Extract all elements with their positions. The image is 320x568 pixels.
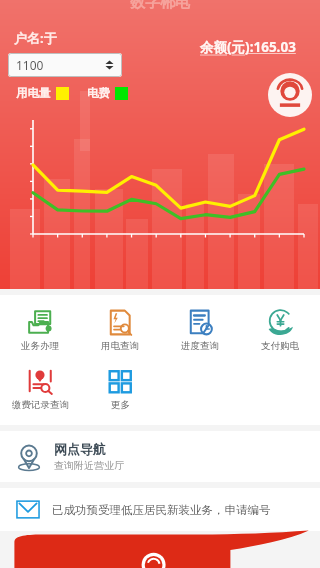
staticText: 支付购电: [261, 340, 299, 352]
staticText: 户名:于: [14, 29, 57, 47]
button[interactable]: 支付购电: [240, 305, 320, 356]
button[interactable]: 1100: [8, 53, 122, 77]
staticText: 业务办理: [21, 340, 59, 352]
staticText: 1100: [16, 57, 44, 73]
button[interactable]: 用电查询: [80, 305, 160, 356]
button[interactable]: 客服热线: [268, 73, 312, 117]
staticText: 数字郴电: [130, 0, 190, 12]
staticText: 更多: [111, 399, 130, 411]
button[interactable]: 进度查询: [160, 305, 240, 356]
button[interactable]: 更多: [80, 364, 160, 415]
staticText: 用电查询: [101, 340, 139, 352]
staticText: 用电量: [16, 86, 51, 100]
staticText: 已成功预受理低压居民新装业务，申请编号[01200: [52, 503, 304, 517]
button[interactable]: 缴费记录查询: [0, 364, 80, 415]
staticText: 查询附近营业厅: [54, 459, 124, 472]
staticText: 进度查询: [181, 340, 219, 352]
button[interactable]: 已成功预受理低压居民新装业务，申请编号[01200: [0, 488, 320, 531]
button[interactable]: 业务办理: [0, 305, 80, 356]
staticText: 电费: [87, 86, 110, 100]
staticText: 网点导航: [54, 441, 106, 457]
button[interactable]: 网点导航: [0, 431, 320, 482]
staticText: 余额(元):165.03: [200, 38, 296, 56]
staticText: 缴费记录查询: [12, 399, 69, 411]
